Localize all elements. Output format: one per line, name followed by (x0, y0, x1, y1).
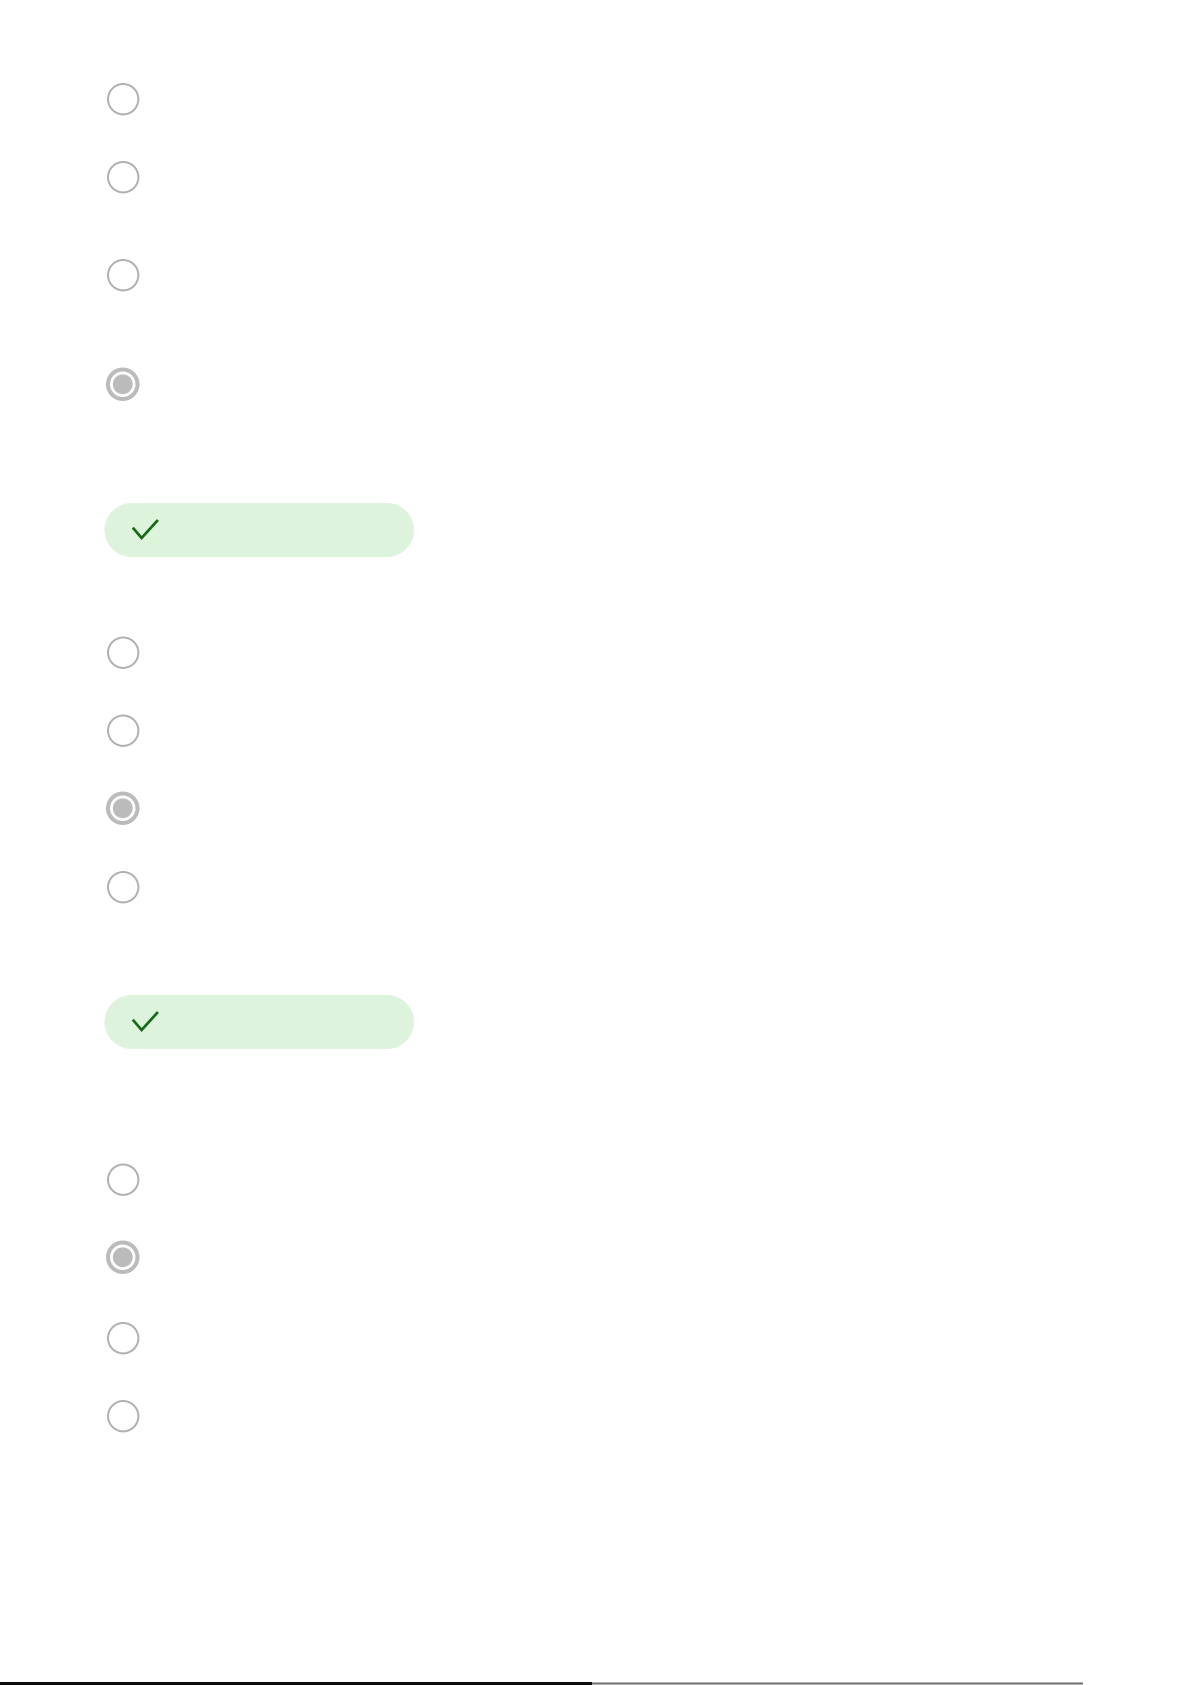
button[interactable]: Answer, selected (106, 367, 1085, 401)
button[interactable]: Answer, selected (106, 791, 1085, 871)
button[interactable]: Answer (106, 636, 1085, 714)
button[interactable]: Answer (106, 83, 1085, 161)
button[interactable]: Answer (106, 1322, 1085, 1400)
button[interactable]: Answer, selected (106, 1240, 1085, 1322)
button[interactable]: Answer (106, 1163, 1085, 1240)
button[interactable]: Answer (106, 259, 1085, 367)
button[interactable]: Answer (106, 1400, 1085, 1434)
button[interactable]: Answer (106, 871, 1085, 905)
button[interactable]: Answer (106, 714, 1085, 791)
button[interactable]: Answer (106, 161, 1085, 259)
button[interactable]: Correct answer (106, 503, 414, 557)
button[interactable]: Correct answer (106, 995, 414, 1049)
